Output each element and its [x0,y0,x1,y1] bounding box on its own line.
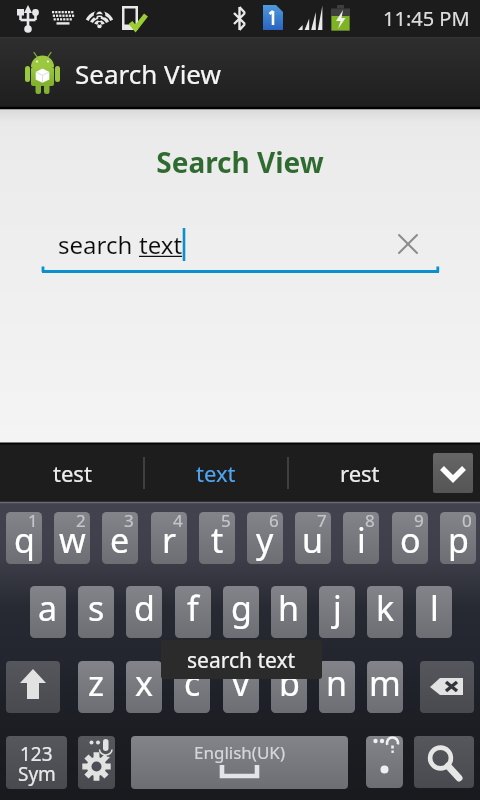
staticText: 6 [269,512,279,532]
staticText: p [448,517,469,563]
button[interactable]: Settings [78,736,115,789]
staticText: z [88,661,104,706]
staticText: search [58,228,139,261]
staticText: w [59,517,86,563]
button[interactable]: i [343,512,379,564]
staticText: v [232,661,250,706]
staticText: b [279,661,300,706]
staticText: 8 [365,512,375,532]
button[interactable]: l [416,586,452,638]
button[interactable]: g [223,586,259,638]
staticText: j [333,586,342,631]
button[interactable]: k [367,586,403,638]
staticText: 3 [124,512,134,532]
staticText: 2 [76,512,86,532]
button[interactable]: Expand suggestions [433,453,473,493]
button[interactable]: e [102,512,138,564]
button[interactable]: x [126,661,162,713]
button[interactable]: h [271,586,307,638]
staticText: Search View [75,56,221,91]
button[interactable]: Period and symbols [366,736,403,788]
staticText: 4 [173,512,183,532]
staticText: 5 [221,512,231,532]
button[interactable]: Numbers and symbols [6,736,67,789]
button[interactable]: o [392,512,428,564]
button[interactable]: z [78,661,114,713]
staticText: 7 [317,512,327,532]
button[interactable]: v [223,661,259,713]
staticText: i [357,517,366,563]
staticText: x [135,661,153,706]
button[interactable]: n [319,661,355,713]
button[interactable]: c [174,661,210,713]
button[interactable]: test [0,444,144,502]
button[interactable]: u [295,512,331,564]
staticText: a [38,586,58,631]
staticText: d [134,586,155,631]
staticText: c [184,661,201,706]
staticText: 1 [28,512,38,532]
staticText: s [88,586,105,631]
staticText: q [14,517,35,563]
staticText: y [256,517,274,563]
staticText: f [187,586,199,631]
button[interactable]: m [367,661,403,713]
button[interactable]: Search [414,736,474,788]
button[interactable]: b [271,661,307,713]
staticText: 123 [20,741,53,767]
button[interactable]: t [199,512,235,564]
button[interactable]: Shift [6,661,60,713]
staticText: t [211,517,224,563]
staticText: e [110,517,130,563]
button[interactable]: a [30,586,66,638]
staticText: m [369,661,401,706]
staticText: g [231,586,252,631]
staticText: Sym [18,761,56,787]
button[interactable]: s [78,586,114,638]
staticText: k [376,586,395,631]
staticText: h [278,586,300,631]
staticText: o [400,517,421,563]
button[interactable]: Backspace [420,661,474,713]
button[interactable]: j [319,586,355,638]
staticText: test [53,458,92,488]
staticText: English(UK) [194,741,285,764]
button[interactable]: y [247,512,283,564]
button[interactable]: p [440,512,476,564]
button[interactable]: rest [288,444,432,502]
staticText: text [196,458,236,488]
staticText: n [326,661,348,706]
staticText: text [139,228,183,261]
staticText: search text [187,646,296,675]
staticText: l [430,586,439,631]
staticText: Search View [0,143,480,181]
button[interactable]: r [151,512,187,564]
button[interactable]: Space [131,736,348,789]
button[interactable]: f [175,586,211,638]
button[interactable]: w [54,512,90,564]
button[interactable]: d [126,586,162,638]
staticText: 0 [462,512,472,532]
staticText: r [162,517,177,563]
staticText: rest [340,458,380,488]
staticText: u [302,517,324,563]
button[interactable]: q [6,512,42,564]
staticText: 9 [414,512,424,532]
button[interactable]: text [144,444,288,502]
staticText: 11:45 PM [383,5,470,32]
